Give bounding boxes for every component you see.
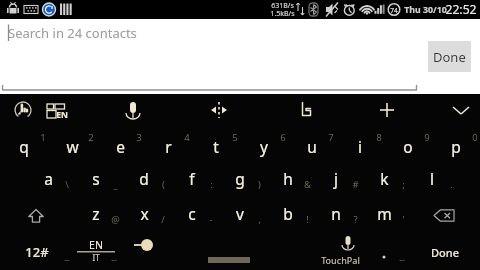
staticText: &: [304, 178, 311, 191]
button[interactable]: [312, 195, 360, 231]
button[interactable]: [72, 160, 120, 196]
staticText: e: [116, 136, 125, 157]
staticText: TouchPal: [321, 254, 360, 266]
staticText: .: [450, 178, 453, 191]
staticText: ': [402, 213, 405, 226]
staticText: ···: [111, 256, 117, 266]
button[interactable]: [48, 127, 96, 165]
staticText: Thu 30/10: [404, 4, 447, 16]
staticText: u: [307, 136, 317, 157]
staticText: #: [352, 178, 359, 191]
staticText: l: [430, 168, 434, 189]
button[interactable]: [216, 195, 264, 231]
button[interactable]: Gesture input: [3, 94, 43, 126]
staticText: r: [165, 136, 172, 157]
button[interactable]: Cursor control: [199, 94, 239, 126]
staticText: 4: [184, 131, 190, 144]
staticText: @: [111, 213, 120, 226]
staticText: y: [260, 136, 268, 157]
button[interactable]: [384, 127, 432, 165]
button[interactable]: Search in 24 contacts: [2, 19, 417, 91]
staticText: ···: [64, 256, 70, 266]
button[interactable]: [288, 127, 336, 165]
staticText: ,: [258, 213, 261, 226]
staticText: Done: [433, 48, 466, 66]
staticText: p: [451, 136, 461, 157]
staticText: 1.5kB/s: [270, 9, 295, 18]
button[interactable]: Keyboard layout: [38, 94, 78, 126]
button[interactable]: [312, 160, 360, 196]
staticText: 7: [328, 131, 334, 144]
button[interactable]: [264, 160, 312, 196]
button[interactable]: [120, 195, 168, 231]
staticText: g: [235, 168, 245, 189]
button[interactable]: [144, 127, 192, 165]
staticText: -: [209, 213, 213, 226]
staticText: t: [213, 136, 219, 157]
button[interactable]: TouchPal menu: [285, 94, 325, 126]
button[interactable]: [336, 127, 384, 165]
staticText: f: [189, 168, 195, 189]
button[interactable]: Add: [367, 94, 407, 126]
staticText: n: [331, 203, 341, 224]
staticText: IT: [92, 252, 100, 263]
staticText: ···: [399, 256, 405, 266]
staticText: a: [44, 168, 53, 189]
staticText: 9: [424, 131, 430, 144]
staticText: 22:52: [445, 1, 477, 18]
button[interactable]: [192, 127, 240, 165]
staticText: 8: [376, 131, 382, 144]
staticText: (: [162, 178, 165, 191]
button[interactable]: Hide keyboard: [441, 94, 480, 126]
staticText: EN: [89, 238, 103, 252]
staticText: :: [210, 178, 213, 191]
staticText: 2: [88, 131, 94, 144]
staticText: k: [380, 168, 389, 189]
staticText: b: [283, 203, 293, 224]
button[interactable]: [0, 127, 48, 165]
staticText: 74: [390, 6, 398, 15]
button[interactable]: Shift: [12, 198, 60, 234]
staticText: z: [92, 203, 100, 224]
staticText: Search in 24 contacts: [8, 24, 137, 42]
staticText: 6: [280, 131, 286, 144]
staticText: _: [113, 178, 118, 191]
staticText: Done: [431, 245, 459, 260]
button[interactable]: Done: [428, 41, 471, 72]
button[interactable]: [264, 195, 312, 231]
staticText: c: [188, 203, 196, 224]
staticText: EN: [56, 109, 68, 121]
staticText: h: [283, 168, 293, 189]
button[interactable]: [240, 127, 288, 165]
button[interactable]: [168, 160, 216, 196]
button[interactable]: [360, 160, 408, 196]
staticText: \: [65, 178, 69, 191]
button[interactable]: [120, 160, 168, 196]
staticText: s: [92, 168, 100, 189]
button[interactable]: [14, 236, 60, 268]
button[interactable]: [72, 195, 120, 231]
staticText: ;: [402, 178, 405, 191]
staticText: !: [306, 213, 309, 226]
staticText: /: [161, 213, 165, 226]
button[interactable]: [432, 127, 480, 165]
staticText: d: [139, 168, 149, 189]
staticText: 1: [40, 131, 46, 144]
staticText: ?: [353, 213, 358, 226]
button[interactable]: [420, 236, 470, 268]
button[interactable]: [216, 160, 264, 196]
staticText: 5: [232, 131, 238, 144]
staticText: x: [140, 203, 149, 224]
staticText: m: [377, 203, 392, 224]
staticText: ): [258, 178, 261, 191]
button[interactable]: Voice input: [113, 94, 153, 126]
button[interactable]: [408, 160, 456, 196]
button[interactable]: Backspace: [420, 198, 468, 234]
button[interactable]: [96, 127, 144, 165]
staticText: 631B/s: [271, 1, 294, 10]
button[interactable]: [168, 195, 216, 231]
button[interactable]: [360, 195, 408, 231]
button[interactable]: [24, 160, 72, 196]
staticText: o: [403, 136, 413, 157]
staticText: w: [66, 136, 79, 157]
